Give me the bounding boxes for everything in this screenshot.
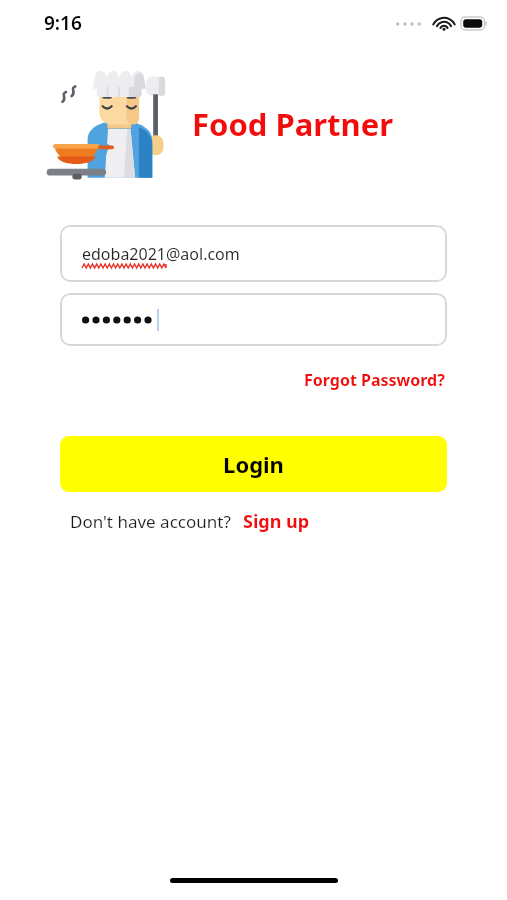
staticText: Login <box>223 449 284 479</box>
button[interactable]: Sign up <box>241 506 312 537</box>
staticText: Forgot Password? <box>304 369 445 391</box>
staticText: 9:16 <box>44 10 82 36</box>
button[interactable]: Forgot Password? <box>302 366 447 394</box>
staticText: edoba2021@aol.com <box>82 243 240 265</box>
button[interactable]: edoba2021@aol.com <box>60 225 447 282</box>
staticText: Sign up <box>243 509 310 534</box>
staticText: Food Partner <box>192 103 394 145</box>
button[interactable]: Login <box>60 436 447 492</box>
button[interactable] <box>60 293 447 346</box>
staticText: Don't have account? <box>70 510 231 533</box>
